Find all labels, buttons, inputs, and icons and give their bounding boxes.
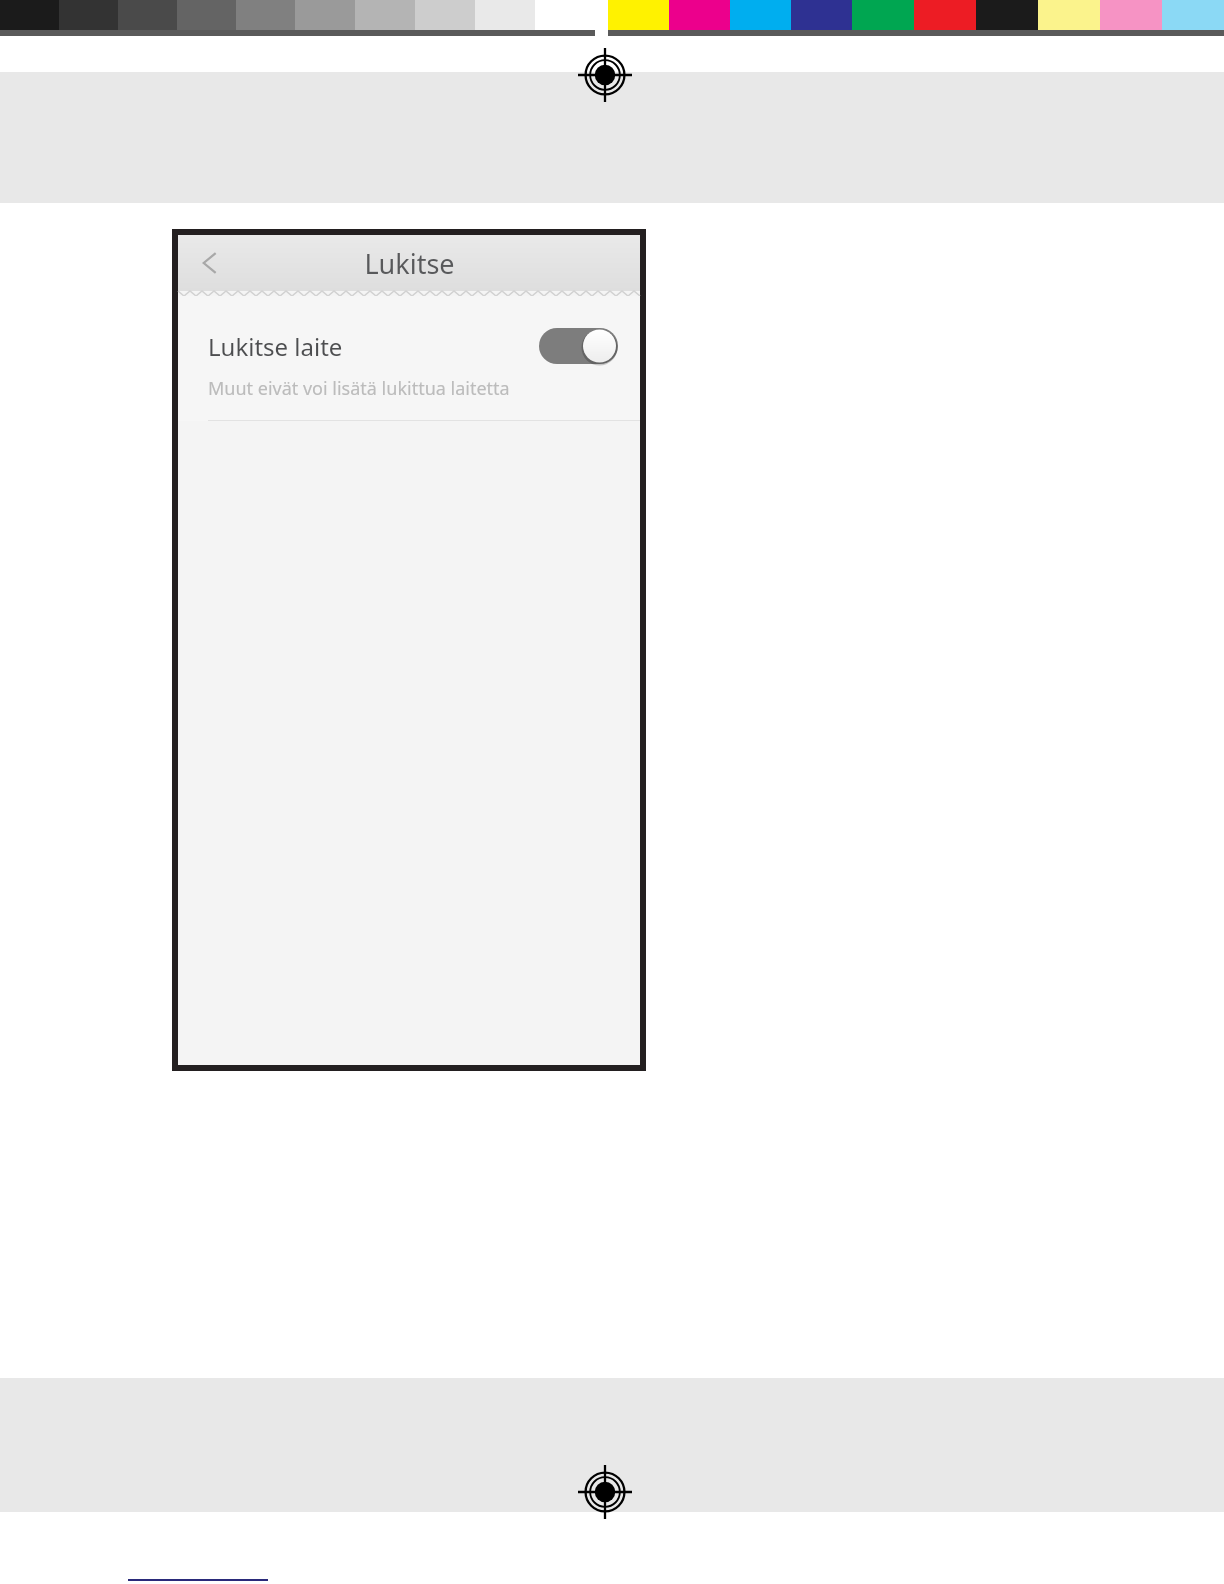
button[interactable]: Lukitse laite toggle bbox=[539, 328, 618, 364]
button[interactable]: Lukitse laite bbox=[178, 318, 640, 374]
staticText: Lukitse laite bbox=[208, 330, 343, 363]
button[interactable]: Back bbox=[188, 240, 234, 286]
staticText: Muut eivät voi lisätä lukittua laitetta bbox=[208, 376, 510, 401]
staticText: Lukitse bbox=[364, 245, 455, 282]
